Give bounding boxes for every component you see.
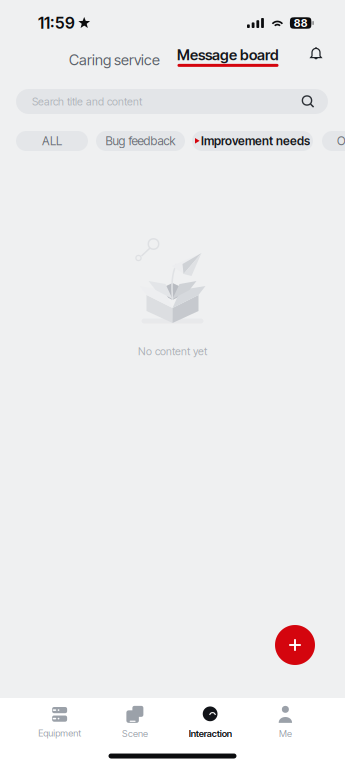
button[interactable]: New post <box>271 621 319 669</box>
staticText: Improvement needs <box>201 134 310 148</box>
button[interactable]: Search title and content <box>16 89 328 114</box>
staticText: Me <box>279 728 292 739</box>
staticText: Bug feedback <box>105 134 175 148</box>
button[interactable]: Message board <box>177 47 279 73</box>
staticText: Other <box>337 134 345 148</box>
staticText: 88 <box>294 16 308 29</box>
staticText: Message board <box>177 46 279 64</box>
button[interactable]: Other <box>322 131 345 151</box>
staticText: Equipment <box>38 727 81 739</box>
staticText: 11:59 <box>38 13 75 33</box>
staticText: Caring service <box>69 51 160 69</box>
staticText: Interaction <box>189 728 232 739</box>
button[interactable]: Scene <box>97 707 172 745</box>
staticText: Search title and content <box>32 95 142 108</box>
button[interactable]: Caring service <box>0 47 177 73</box>
button[interactable]: Equipment <box>22 707 97 745</box>
button[interactable]: ALL <box>16 131 88 151</box>
staticText: Scene <box>122 728 148 739</box>
button[interactable]: Interaction <box>172 707 248 745</box>
button[interactable]: Me <box>248 707 323 745</box>
button[interactable]: Notifications <box>302 47 330 73</box>
staticText: ALL <box>42 134 62 148</box>
staticText: No content yet <box>138 345 207 358</box>
button[interactable]: Bug feedback <box>96 131 185 151</box>
button[interactable]: Improvement needs <box>192 131 313 151</box>
